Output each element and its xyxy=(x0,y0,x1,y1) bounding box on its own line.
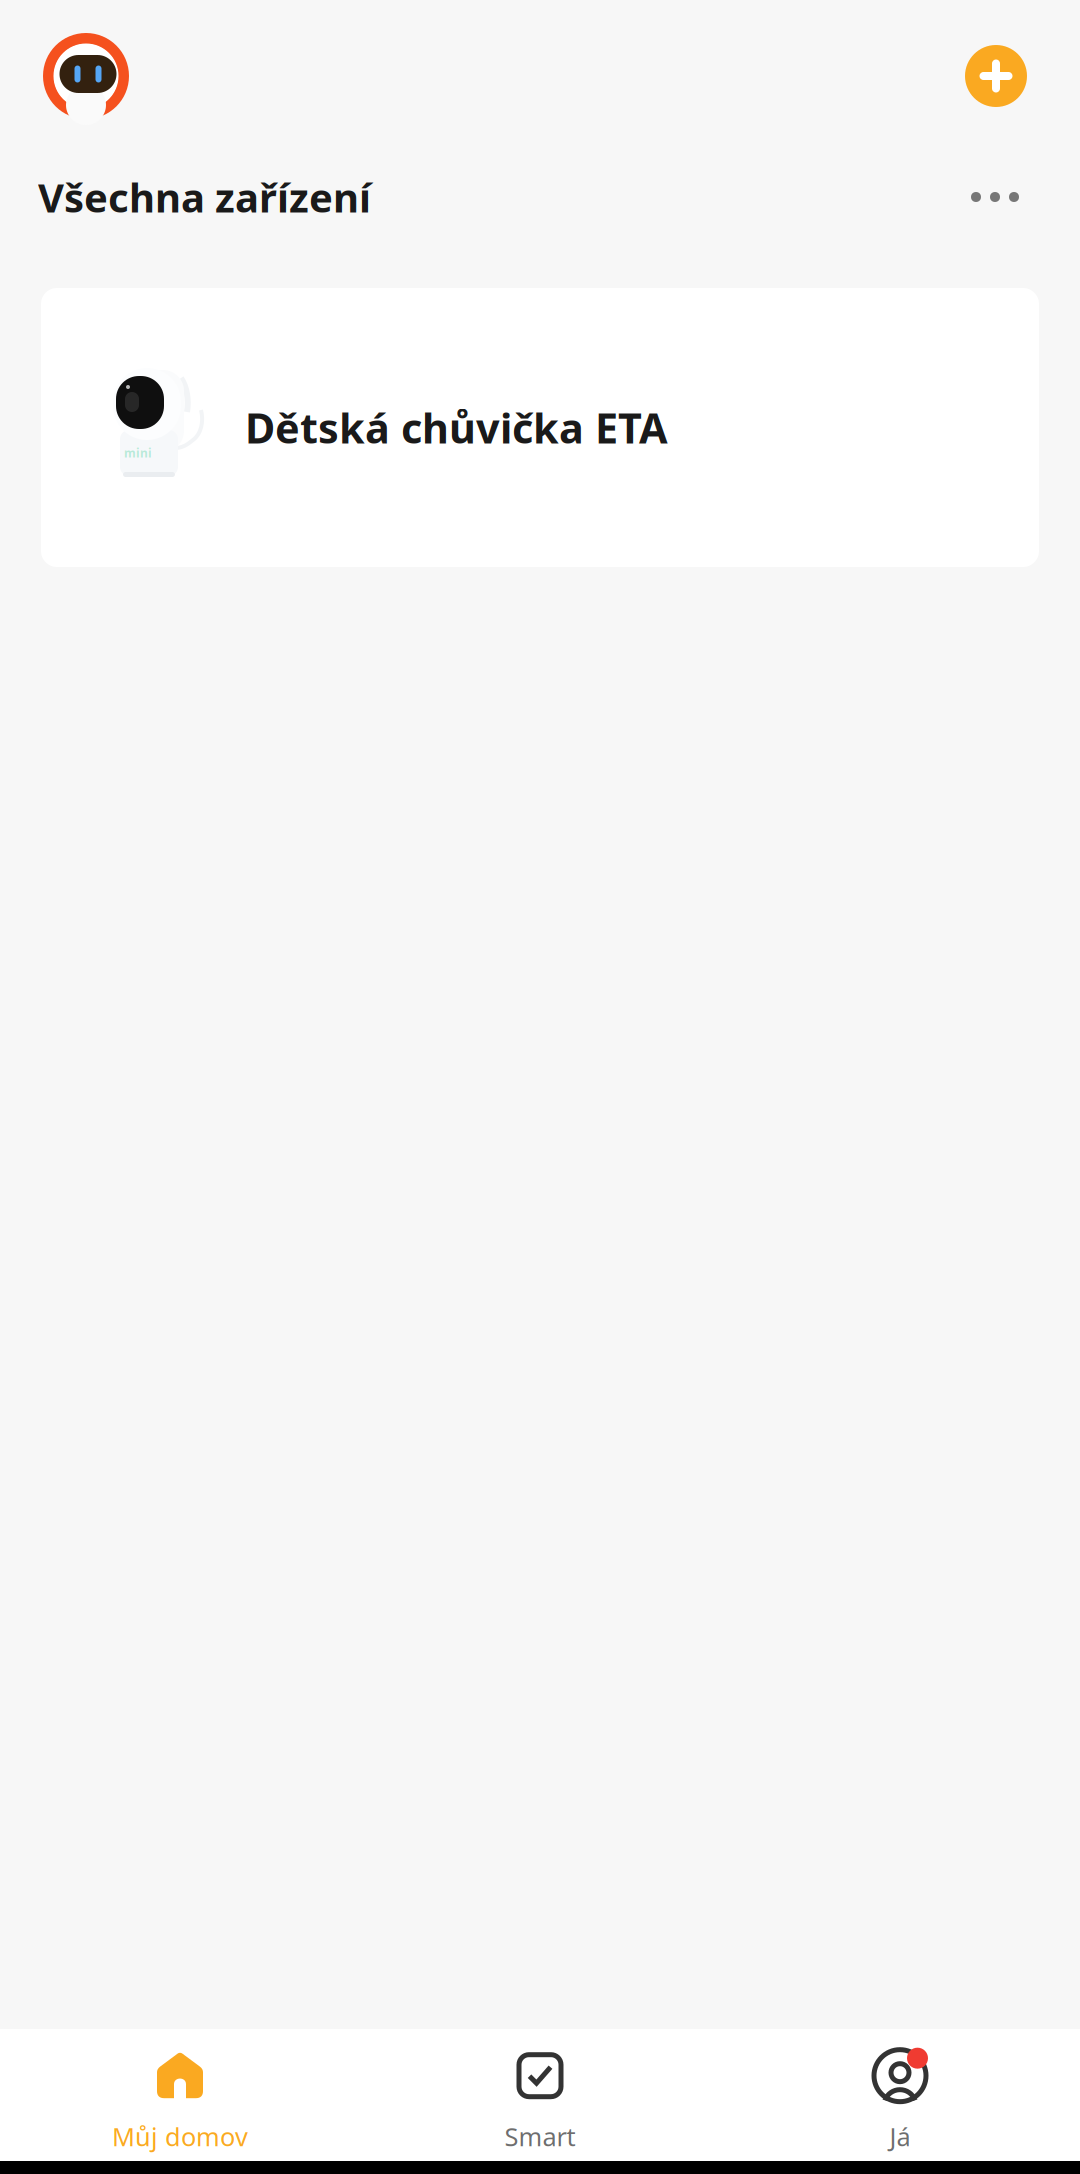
staticText: Můj domov xyxy=(112,2120,248,2153)
button[interactable]: mini xyxy=(0,242,1080,567)
staticText: mini xyxy=(124,445,152,461)
button[interactable]: Já xyxy=(720,2030,1080,2160)
button[interactable]: Add device xyxy=(965,26,1080,126)
button[interactable]: More options xyxy=(971,170,1080,224)
staticText: Já xyxy=(889,2120,910,2153)
staticText: Všechna zařízení xyxy=(38,170,371,223)
staticText: Dětská chůvička ETA xyxy=(245,400,668,455)
button[interactable]: Smart xyxy=(360,2030,720,2160)
button[interactable]: Můj domov xyxy=(0,2030,360,2160)
button[interactable]: Assistant xyxy=(0,30,132,122)
staticText: Smart xyxy=(504,2120,575,2153)
